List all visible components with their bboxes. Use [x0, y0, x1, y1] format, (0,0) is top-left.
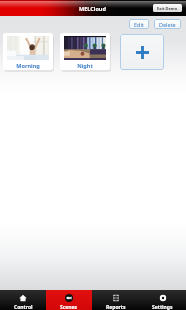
staticText: Reports [106, 304, 126, 310]
button[interactable]: Scenes [46, 290, 92, 310]
staticText: Night [77, 62, 93, 69]
button[interactable]: Add scene [120, 34, 164, 70]
staticText: Scenes [60, 304, 78, 310]
button[interactable]: Exit Demo [153, 4, 182, 12]
staticText: MELCloud [79, 5, 106, 12]
button[interactable]: Reports [92, 290, 139, 310]
button[interactable]: Settings [139, 290, 186, 310]
staticText: Settings [152, 304, 173, 310]
staticText: Edit [134, 21, 144, 28]
staticText: Control [14, 304, 33, 310]
staticText: Delete [159, 21, 176, 28]
button[interactable]: Night [60, 33, 110, 70]
button[interactable]: Morning [3, 33, 53, 70]
staticText: Exit Demo [157, 6, 178, 11]
button[interactable]: Control [0, 290, 46, 310]
staticText: Morning [16, 62, 40, 69]
button[interactable]: Edit [129, 19, 149, 29]
button[interactable]: Delete [154, 19, 181, 29]
